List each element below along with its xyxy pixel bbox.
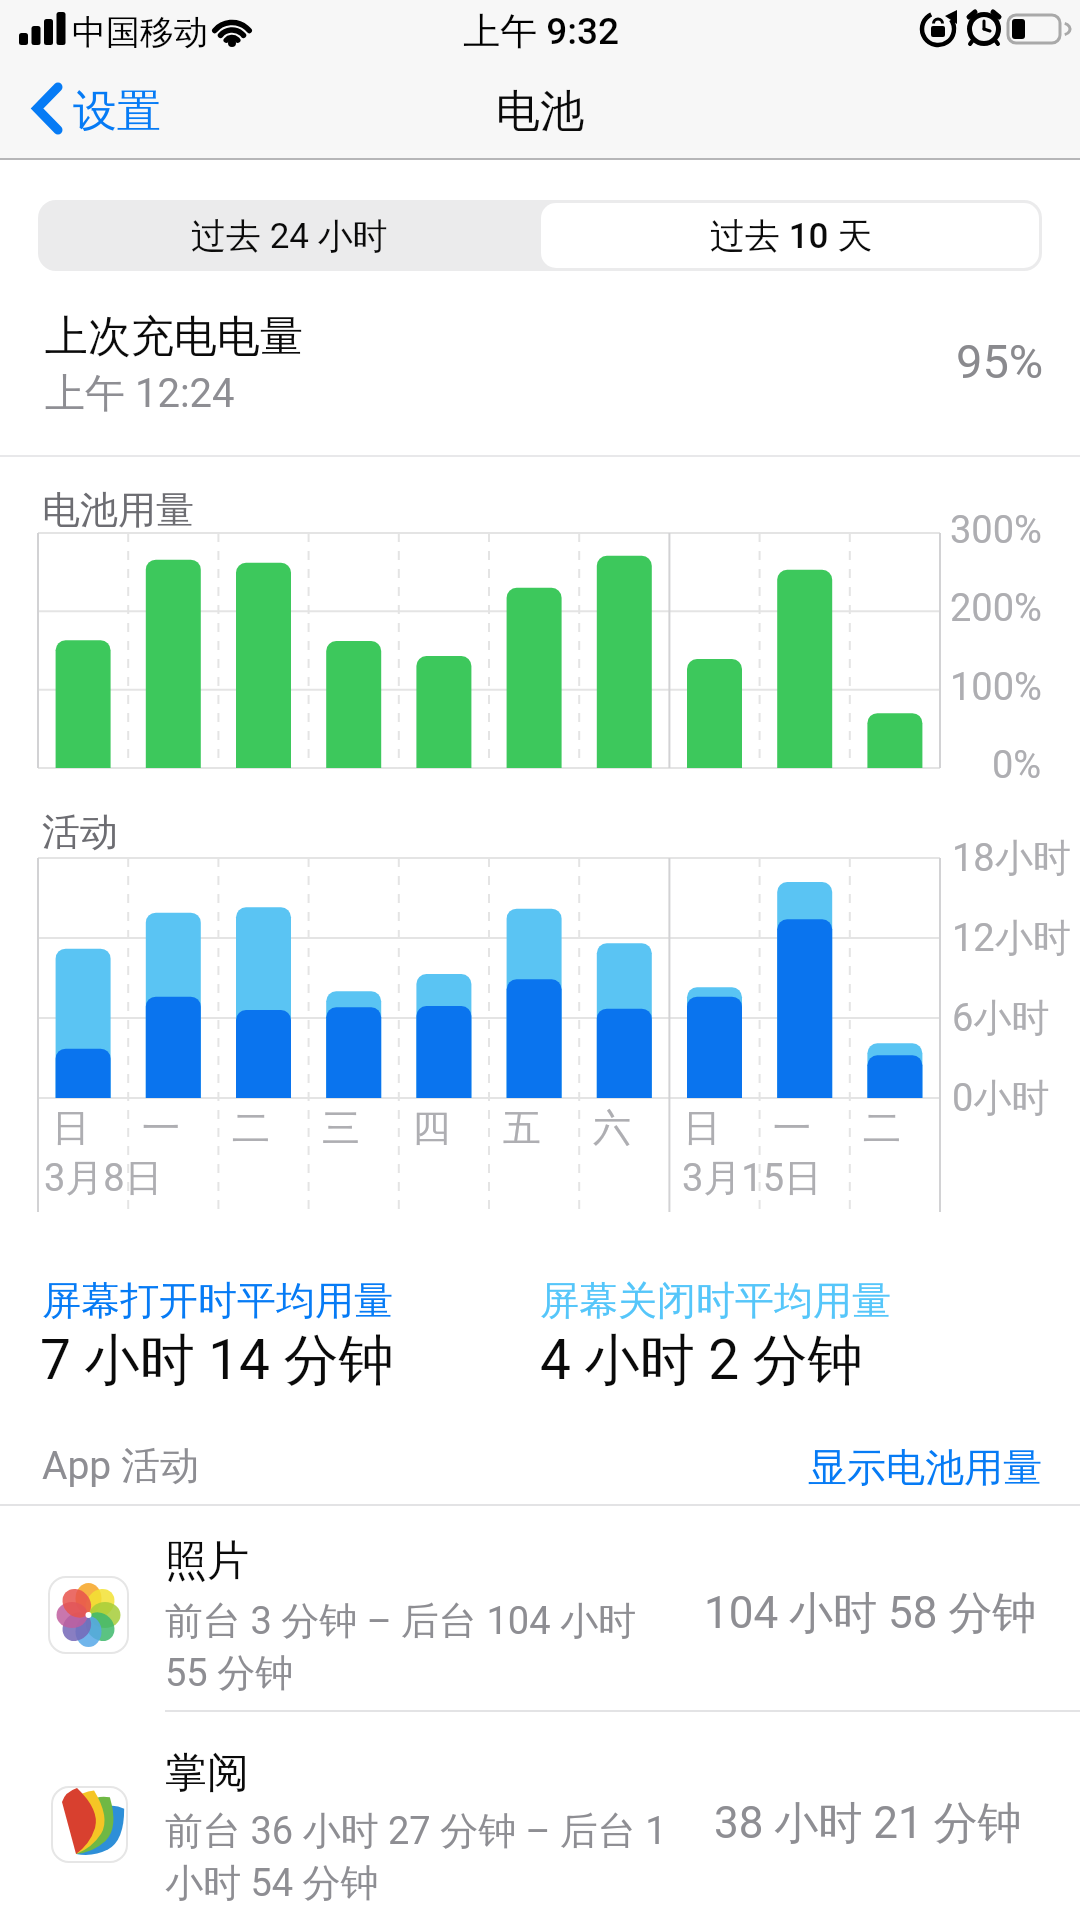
staticText: 6小时: [952, 994, 1050, 1042]
staticText: 小时 54 分钟: [165, 1859, 379, 1907]
button[interactable]: [0, 1510, 1080, 1710]
staticText: 电池用量: [42, 486, 194, 534]
staticText: 日: [683, 1104, 721, 1152]
staticText: 屏幕打开时平均用量: [42, 1276, 393, 1325]
staticText: 0%: [992, 743, 1042, 788]
staticText: 4 小时 2 分钟: [540, 1326, 863, 1395]
staticText: 日: [52, 1104, 90, 1152]
staticText: 38 小时 21 分钟: [714, 1796, 1022, 1851]
staticText: 二: [863, 1104, 901, 1152]
button[interactable]: 过去 10 天: [540, 200, 1042, 271]
staticText: 300%: [950, 508, 1042, 553]
staticText: 过去 24 小时: [191, 214, 388, 258]
staticText: 55 分钟: [165, 1649, 294, 1697]
staticText: App 活动: [42, 1441, 199, 1490]
staticText: 三: [322, 1104, 360, 1152]
staticText: 上次充电电量: [45, 310, 303, 364]
button[interactable]: [20, 75, 200, 145]
staticText: 12小时: [952, 914, 1071, 962]
staticText: 200%: [950, 586, 1042, 631]
staticText: 上午 12:24: [45, 368, 235, 418]
staticText: 五: [503, 1104, 541, 1152]
staticText: 六: [593, 1104, 631, 1152]
staticText: 掌阅: [165, 1747, 249, 1800]
button[interactable]: [0, 1715, 1080, 1920]
staticText: 18小时: [952, 834, 1071, 882]
button[interactable]: 过去 24 小时: [38, 200, 540, 271]
staticText: 3月8日: [44, 1154, 163, 1202]
staticText: 100%: [950, 665, 1042, 710]
staticText: 一: [773, 1104, 811, 1152]
staticText: 7 小时 14 分钟: [40, 1326, 394, 1395]
staticText: 一: [142, 1104, 180, 1152]
staticText: 上午 9:32: [463, 8, 620, 55]
staticText: 照片: [165, 1535, 249, 1588]
staticText: 中国移动: [72, 11, 208, 54]
staticText: 前台 3 分钟 – 后台 104 小时: [165, 1597, 636, 1645]
staticText: 3月15日: [682, 1154, 823, 1202]
staticText: 屏幕关闭时平均用量: [540, 1276, 891, 1325]
button[interactable]: [700, 1435, 1050, 1495]
staticText: 前台 36 小时 27 分钟 – 后台 1: [165, 1807, 667, 1855]
staticText: 0小时: [952, 1074, 1050, 1122]
staticText: 四: [412, 1104, 450, 1152]
staticText: 104 小时 58 分钟: [704, 1586, 1037, 1641]
staticText: 过去 10 天: [710, 214, 873, 258]
staticText: 设置: [73, 84, 161, 139]
staticText: 电池: [496, 84, 584, 139]
staticText: 显示电池用量: [808, 1443, 1042, 1492]
staticText: 活动: [42, 808, 118, 856]
staticText: 二: [232, 1104, 270, 1152]
staticText: 95%: [956, 334, 1044, 389]
